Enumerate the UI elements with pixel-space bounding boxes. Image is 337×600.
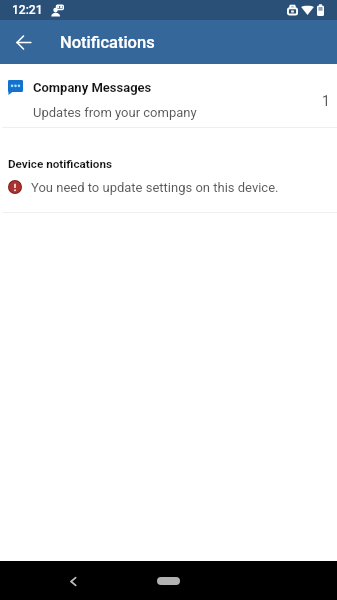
button[interactable]: Navigate up bbox=[7, 26, 39, 58]
staticText: Notifications bbox=[60, 33, 155, 52]
staticText: 1 bbox=[322, 93, 330, 109]
staticText: Updates from your company bbox=[33, 105, 197, 120]
button[interactable]: Home bbox=[157, 577, 180, 585]
staticText: Company Messages bbox=[33, 80, 152, 95]
staticText: Device notifications bbox=[8, 157, 113, 171]
button[interactable]: Company Messages bbox=[0, 64, 337, 127]
button[interactable]: You need to update settings on this devi… bbox=[0, 176, 337, 198]
staticText: 12:21 bbox=[12, 3, 43, 17]
staticText: You need to update settings on this devi… bbox=[31, 180, 279, 195]
button[interactable]: Back bbox=[58, 566, 88, 596]
